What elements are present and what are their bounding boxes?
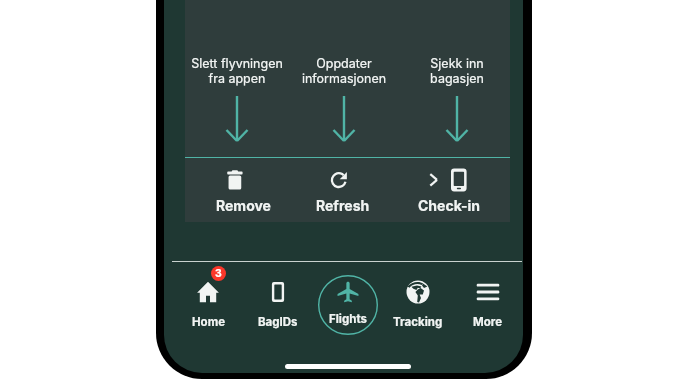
button[interactable]: Remove bbox=[191, 166, 295, 214]
staticText: Oppdater informasjonen bbox=[274, 56, 414, 148]
staticText: Sjekk inn bagasjen bbox=[387, 56, 523, 148]
button[interactable]: Home bbox=[173, 270, 243, 332]
staticText: More bbox=[473, 315, 503, 329]
staticText: Slett flyvningen fra appen bbox=[167, 56, 307, 148]
staticText: BagIDs bbox=[258, 315, 298, 329]
staticText: Tracking bbox=[393, 315, 443, 329]
staticText: Home bbox=[192, 315, 225, 329]
staticText: Refresh bbox=[316, 197, 370, 214]
button[interactable]: Flights bbox=[313, 270, 383, 332]
button[interactable]: More bbox=[453, 270, 523, 332]
button[interactable]: BagIDs bbox=[243, 270, 313, 332]
staticText: Flights bbox=[329, 312, 367, 326]
staticText: Remove bbox=[216, 197, 271, 214]
button[interactable]: Refresh bbox=[291, 166, 395, 214]
staticText: 3 bbox=[215, 267, 222, 280]
staticText: Check-in bbox=[418, 197, 481, 214]
button[interactable]: Check-in bbox=[397, 166, 501, 214]
button[interactable]: Tracking bbox=[383, 270, 453, 332]
